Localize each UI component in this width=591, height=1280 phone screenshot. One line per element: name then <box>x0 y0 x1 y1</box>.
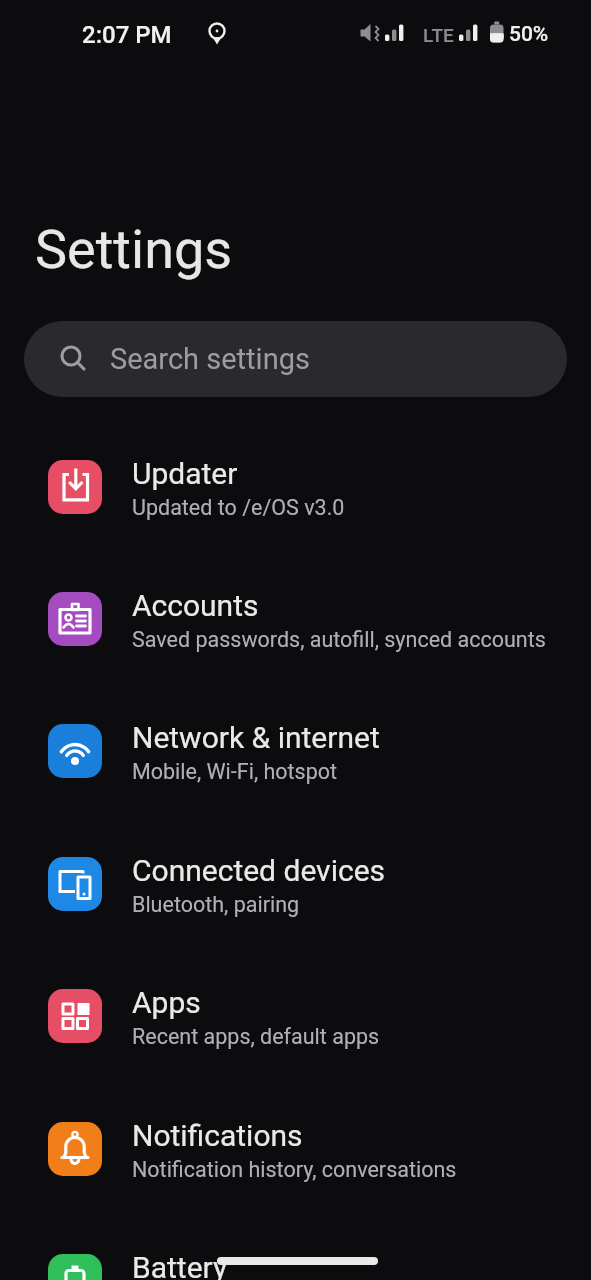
staticText: Mobile, Wi-Fi, hotspot <box>132 759 338 784</box>
staticText: Battery <box>132 1250 228 1280</box>
staticText: Updated to /e/OS v3.0 <box>132 495 345 520</box>
button[interactable]: Updater <box>0 438 591 536</box>
staticText: Recent apps, default apps <box>132 1024 380 1049</box>
staticText: Network & internet <box>132 720 380 755</box>
staticText: Saved passwords, autofill, synced accoun… <box>132 627 546 652</box>
staticText: Accounts <box>132 588 259 623</box>
staticText: Apps <box>132 985 201 1020</box>
staticText: Bluetooth, pairing <box>132 892 300 917</box>
staticText: Notification history, conversations <box>132 1157 457 1182</box>
staticText: Search settings <box>110 342 310 376</box>
button[interactable]: Search settings <box>24 321 567 397</box>
button[interactable]: Connected devices <box>0 835 591 933</box>
staticText: 2:07 PM <box>82 21 172 49</box>
button[interactable]: Accounts <box>0 570 591 668</box>
staticText: Notifications <box>132 1118 303 1153</box>
staticText: LTE <box>423 24 454 46</box>
staticText: 50% <box>509 22 549 47</box>
button[interactable]: Network & internet <box>0 702 591 800</box>
staticText: Updater <box>132 456 238 491</box>
staticText: Connected devices <box>132 853 386 888</box>
button[interactable]: Notifications <box>0 1100 591 1198</box>
button[interactable]: Battery <box>0 1232 591 1280</box>
button[interactable]: Apps <box>0 967 591 1065</box>
staticText: Settings <box>35 218 233 281</box>
